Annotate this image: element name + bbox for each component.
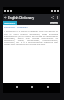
staticText: A dictionary is a listing of lexemes fro… <box>4 30 58 46</box>
button[interactable]: Dictionary <box>3 21 17 25</box>
button[interactable]: Share <box>49 14 55 21</box>
button[interactable]: More options <box>55 14 60 21</box>
button[interactable]: Back <box>3 14 8 21</box>
button[interactable]: Recents <box>45 84 50 89</box>
staticText: Dictionary <box>3 22 16 25</box>
staticText: Translate <box>50 22 58 24</box>
staticText: Dictionary - Wikipedia <box>4 26 28 29</box>
staticText: English Dictionary <box>8 16 35 20</box>
button[interactable]: Home <box>29 84 34 89</box>
button[interactable]: Back <box>14 84 19 89</box>
button[interactable]: Translate <box>50 22 58 24</box>
